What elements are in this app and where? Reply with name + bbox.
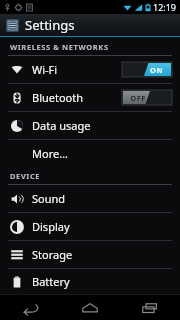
staticText: WIRELESS & NETWORKS <box>10 42 109 52</box>
staticText: Battery <box>32 274 70 289</box>
staticText: DEVICE <box>10 171 41 181</box>
button[interactable]: Recents <box>120 295 180 320</box>
button[interactable]: Battery <box>0 269 180 294</box>
staticText: Wi-Fi <box>32 62 58 77</box>
staticText: Bluetooth <box>32 90 84 105</box>
staticText: ON <box>150 65 163 75</box>
button[interactable]: Home <box>60 295 120 320</box>
button[interactable]: Wi-Fi <box>0 56 180 83</box>
button[interactable]: More… <box>0 140 180 167</box>
button[interactable]: Bluetooth <box>0 84 180 111</box>
button[interactable]: On <box>122 62 172 77</box>
staticText: Storage <box>32 247 73 262</box>
button[interactable]: Data usage <box>0 112 180 139</box>
staticText: Display <box>32 219 70 234</box>
button[interactable]: Display <box>0 213 180 240</box>
button[interactable]: Off <box>122 90 172 105</box>
staticText: Sound <box>32 191 66 206</box>
staticText: 12:19 <box>153 1 177 13</box>
button[interactable]: Storage <box>0 241 180 268</box>
staticText: Data usage <box>32 118 91 133</box>
button[interactable]: Sound <box>0 185 180 212</box>
staticText: Settings <box>25 16 75 34</box>
staticText: OFF <box>130 93 146 103</box>
button[interactable]: Back <box>0 295 60 320</box>
staticText: More… <box>32 146 68 161</box>
